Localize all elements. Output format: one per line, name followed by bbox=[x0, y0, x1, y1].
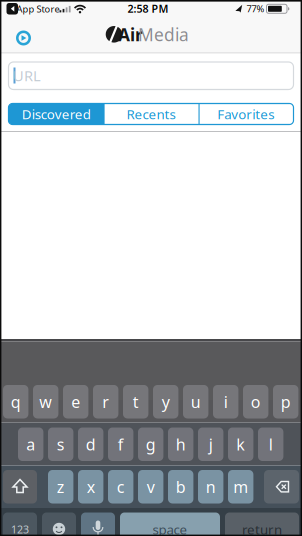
staticText: URL bbox=[13, 66, 41, 85]
staticText: e bbox=[71, 391, 80, 412]
staticText: 77% bbox=[246, 2, 264, 15]
button[interactable]: m bbox=[228, 470, 253, 503]
button[interactable]: n bbox=[198, 470, 223, 503]
staticText: t bbox=[133, 391, 139, 412]
staticText: Discovered bbox=[22, 105, 91, 123]
staticText: space bbox=[152, 520, 187, 536]
staticText: g bbox=[146, 434, 156, 455]
button[interactable]: u bbox=[183, 385, 208, 418]
staticText: z bbox=[57, 476, 65, 497]
button[interactable]: Delete bbox=[264, 470, 299, 503]
staticText: App Store bbox=[16, 3, 59, 15]
staticText: m bbox=[233, 476, 248, 497]
staticText: o bbox=[251, 391, 261, 412]
button[interactable]: Info bbox=[12, 27, 34, 49]
button[interactable]: Recents bbox=[104, 103, 198, 124]
button[interactable]: o bbox=[243, 385, 268, 418]
staticText: b bbox=[176, 476, 186, 497]
button[interactable]: 123 bbox=[3, 512, 37, 536]
staticText: d bbox=[86, 434, 96, 455]
staticText: s bbox=[57, 434, 65, 455]
button[interactable]: d bbox=[78, 427, 103, 461]
staticText: l bbox=[269, 434, 273, 455]
staticText: k bbox=[236, 434, 245, 455]
button[interactable]: Discovered bbox=[8, 103, 104, 124]
staticText: r bbox=[102, 391, 109, 412]
button[interactable]: g bbox=[138, 427, 163, 461]
staticText: a bbox=[26, 434, 35, 455]
staticText: u bbox=[191, 391, 201, 412]
staticText: y bbox=[162, 391, 170, 412]
button[interactable]: e bbox=[63, 385, 88, 418]
button[interactable]: w bbox=[33, 385, 58, 418]
button[interactable]: i bbox=[213, 385, 238, 418]
staticText: c bbox=[117, 476, 125, 497]
button[interactable]: Dictate bbox=[81, 512, 115, 536]
staticText: j bbox=[209, 434, 213, 455]
staticText: 123 bbox=[11, 522, 29, 536]
button[interactable]: f bbox=[108, 427, 133, 461]
button[interactable]: s bbox=[48, 427, 73, 461]
staticText: Favorites bbox=[217, 105, 274, 123]
staticText: w bbox=[39, 391, 52, 412]
staticText: 2:58 PM bbox=[127, 1, 168, 16]
button[interactable]: l bbox=[258, 427, 283, 461]
button[interactable]: Emoji bbox=[42, 512, 76, 536]
staticText: v bbox=[147, 476, 155, 497]
button[interactable]: Shift bbox=[3, 470, 37, 503]
staticText: f bbox=[118, 434, 124, 455]
staticText: x bbox=[87, 476, 95, 497]
button[interactable]: return bbox=[225, 512, 299, 536]
staticText: p bbox=[281, 391, 291, 412]
button[interactable]: b bbox=[168, 470, 193, 503]
button[interactable]: j bbox=[198, 427, 223, 461]
staticText: h bbox=[176, 434, 186, 455]
staticText: return bbox=[242, 520, 282, 536]
staticText: Air bbox=[118, 23, 143, 46]
staticText: Media bbox=[138, 23, 189, 46]
button[interactable]: v bbox=[138, 470, 163, 503]
button[interactable]: p bbox=[273, 385, 298, 418]
button[interactable]: h bbox=[168, 427, 193, 461]
button[interactable]: z bbox=[48, 470, 73, 503]
staticText: i bbox=[224, 391, 228, 412]
button[interactable]: Favorites bbox=[198, 103, 293, 124]
button[interactable]: a bbox=[18, 427, 43, 461]
staticText: Recents bbox=[126, 105, 175, 123]
button[interactable]: x bbox=[78, 470, 103, 503]
button[interactable]: space bbox=[120, 512, 220, 536]
button[interactable]: y bbox=[153, 385, 178, 418]
staticText: n bbox=[206, 476, 216, 497]
staticText: q bbox=[11, 391, 21, 412]
button[interactable]: r bbox=[93, 385, 118, 418]
button[interactable]: k bbox=[228, 427, 253, 461]
button[interactable]: c bbox=[108, 470, 133, 503]
button[interactable]: URL bbox=[8, 62, 293, 89]
button[interactable]: q bbox=[3, 385, 28, 418]
button[interactable]: t bbox=[123, 385, 148, 418]
